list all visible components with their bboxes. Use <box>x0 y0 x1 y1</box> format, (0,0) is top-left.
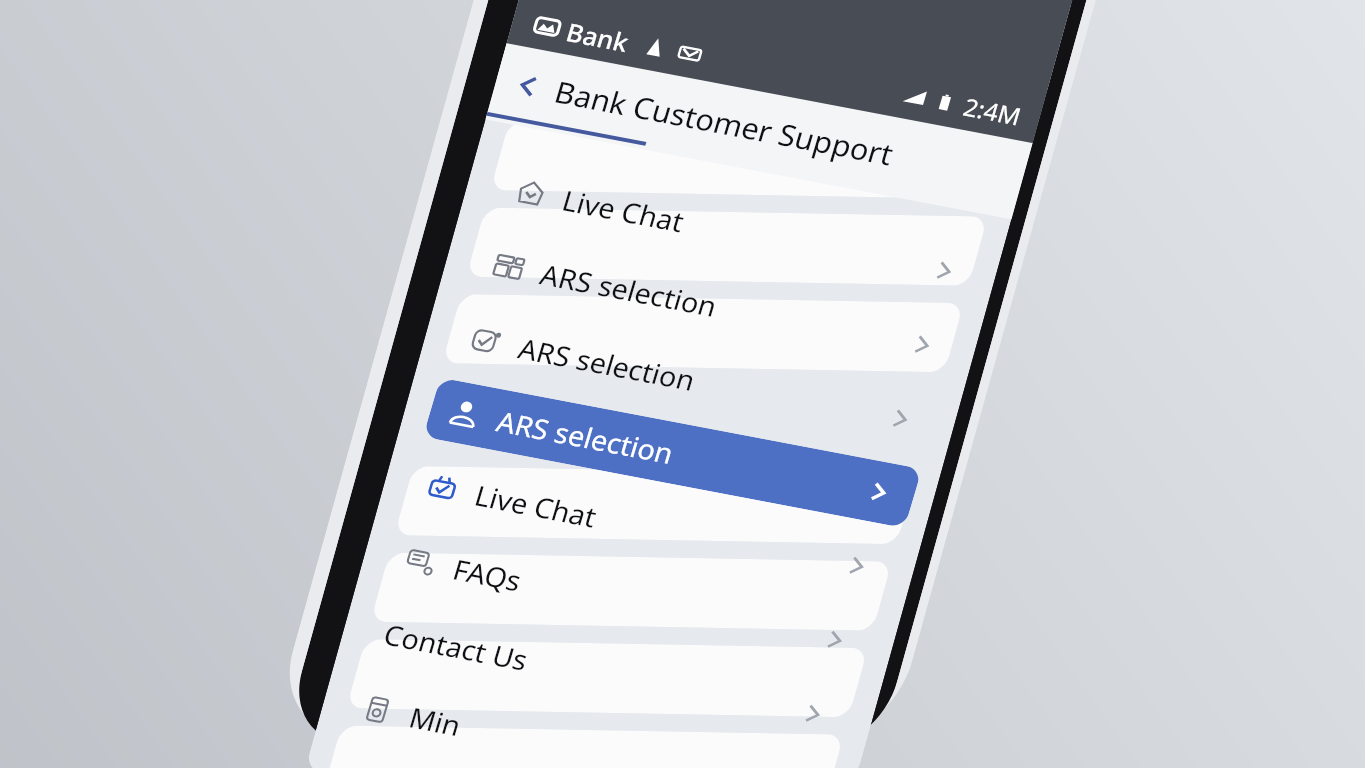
staticText: FAQs <box>400 486 575 663</box>
staticText: Live Chat <box>402 370 670 641</box>
button[interactable]: Contact Us <box>202 202 1039 768</box>
button[interactable]: FAQs <box>178 128 1087 768</box>
staticText: ARS selection <box>404 253 768 621</box>
button[interactable]: Min <box>226 276 992 768</box>
staticText: Min <box>362 647 508 768</box>
button[interactable]: Live Chat <box>250 350 945 768</box>
button[interactable]: ARS selection <box>227 0 1160 768</box>
button[interactable]: Back <box>459 13 601 157</box>
staticText: Live Chat <box>369 665 553 768</box>
staticText: Live Chat <box>489 75 758 346</box>
staticText: Contact Us <box>303 491 610 768</box>
button[interactable]: Live Chat <box>271 0 1201 702</box>
staticText: ARS selection <box>447 106 811 474</box>
button[interactable]: ARS selection <box>205 0 1140 768</box>
staticText: Bank <box>518 0 677 117</box>
button[interactable]: ARS selection <box>249 0 1181 768</box>
staticText: 2:4M <box>918 36 1067 186</box>
staticText: Bank Customer Support <box>399 0 1049 451</box>
staticText: ARS selection <box>425 180 789 548</box>
button[interactable]: Live Chat <box>183 54 1118 768</box>
